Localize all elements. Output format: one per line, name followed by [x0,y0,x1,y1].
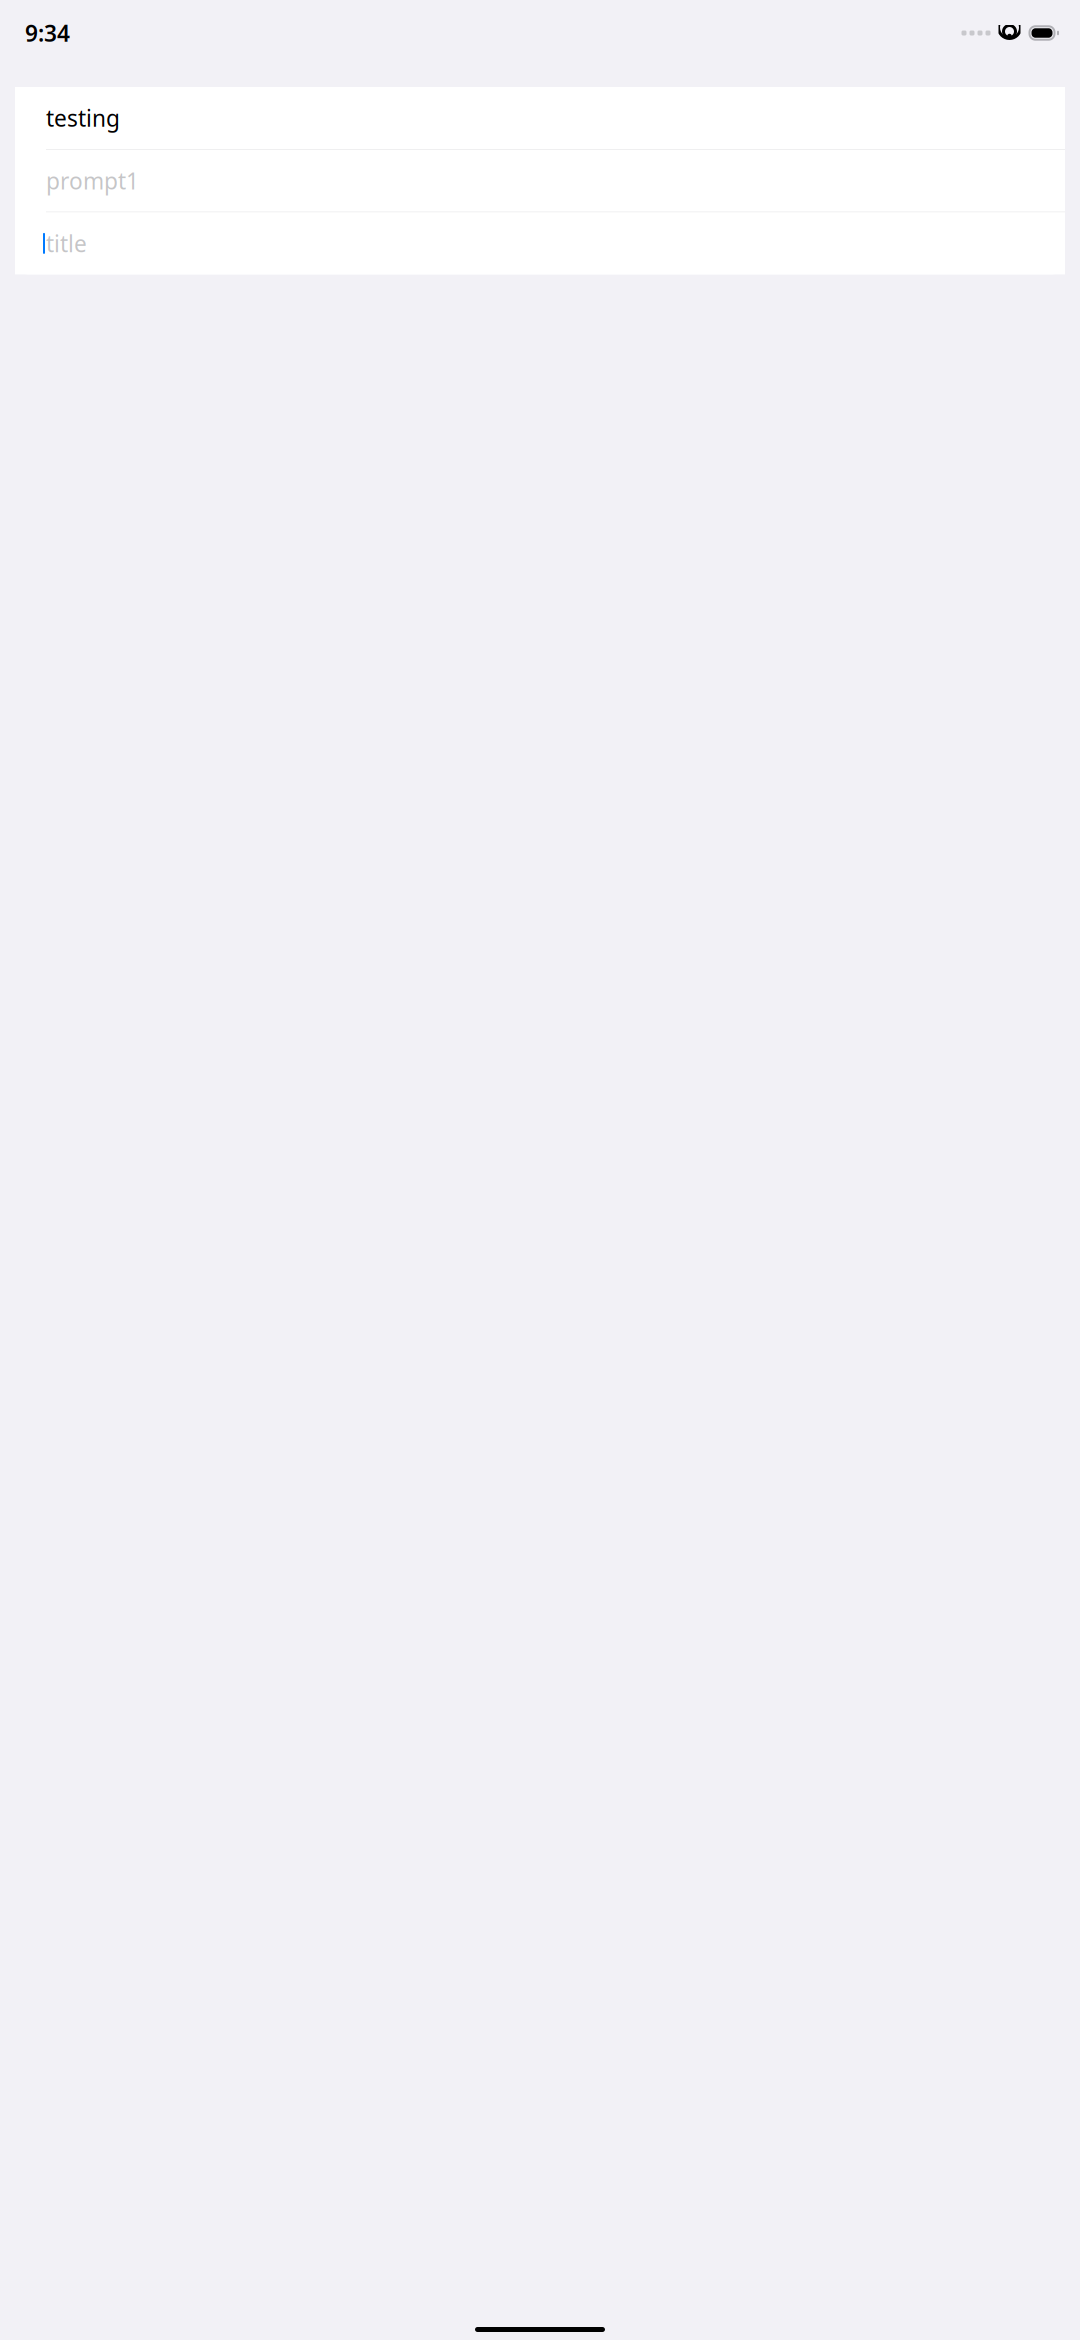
staticText: testing [46,103,120,133]
button[interactable]: prompt1 [15,150,1065,212]
staticText: title [46,228,87,258]
staticText: 9:34 [25,18,70,48]
staticText: prompt1 [46,166,139,196]
button[interactable]: testing [15,87,1065,149]
button[interactable]: title [15,212,1065,274]
